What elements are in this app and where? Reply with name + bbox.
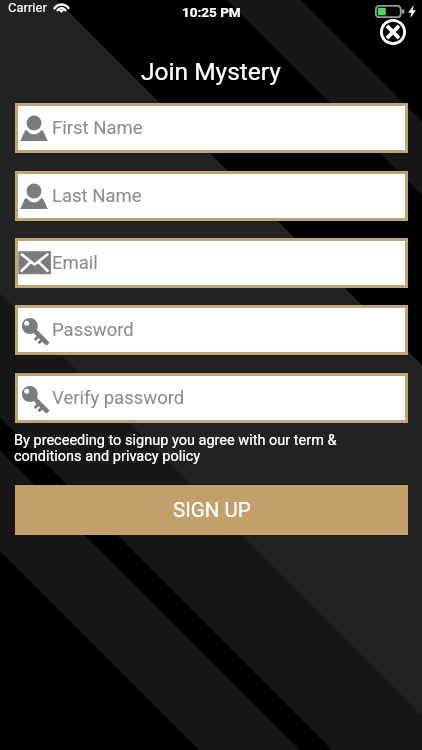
button[interactable]: Verify password	[18, 376, 405, 420]
button[interactable]: Password	[18, 308, 405, 352]
staticText: Carrier	[8, 0, 47, 15]
button[interactable]: Close	[380, 19, 406, 45]
staticText: Password	[52, 319, 134, 341]
staticText: Last Name	[52, 185, 142, 207]
staticText: First Name	[52, 117, 143, 139]
staticText: Join Mystery	[0, 57, 422, 86]
staticText: SIGN UP	[173, 498, 251, 522]
staticText: By preceeding to signup you agree with o…	[14, 432, 337, 464]
button[interactable]: Email	[18, 241, 405, 285]
button[interactable]: First Name	[18, 106, 405, 150]
staticText: 10:25 PM	[182, 4, 241, 20]
staticText: Verify password	[52, 387, 185, 409]
button[interactable]: SIGN UP	[15, 485, 408, 535]
button[interactable]: Last Name	[18, 174, 405, 218]
staticText: Email	[52, 252, 98, 274]
